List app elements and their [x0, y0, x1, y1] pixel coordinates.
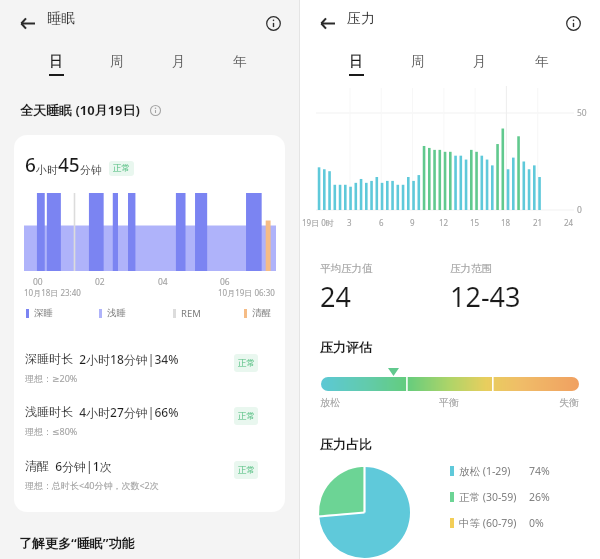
staticText: 小时 [36, 163, 58, 177]
staticText: 深睡时长 [25, 351, 73, 366]
staticText: 浅睡 [107, 307, 126, 319]
button[interactable]: 日 [40, 53, 72, 76]
button[interactable]: 深睡时长 [14, 345, 285, 395]
staticText: 浅睡时长 [25, 404, 73, 419]
staticText: 理想：≤80% [25, 425, 78, 437]
staticText: 放松 [320, 396, 340, 409]
staticText: 0 [577, 204, 582, 216]
staticText: 24 [564, 217, 574, 228]
staticText: 6 [25, 152, 36, 178]
staticText: 理想：总时长<40分钟，次数<2次 [25, 479, 159, 491]
staticText: 正常 [113, 163, 130, 174]
staticText: 分钟 [80, 163, 102, 177]
staticText: 正常 (30-59) [459, 490, 529, 504]
staticText: 年 [233, 53, 247, 70]
staticText: 理想：≥20% [25, 372, 78, 384]
staticText: 压力占比 [320, 436, 372, 452]
staticText: 清醒 [25, 458, 49, 473]
staticText: 全天睡眠 (10月19日) [20, 101, 140, 119]
staticText: 50 [577, 107, 587, 119]
staticText: 正常 [238, 411, 255, 422]
staticText: 压力评估 [320, 339, 372, 355]
staticText: 周 [110, 53, 124, 70]
staticText: 10月18日 23:40 [24, 287, 81, 298]
button[interactable]: 周 [101, 53, 133, 74]
staticText: 正常 [238, 465, 255, 476]
button[interactable]: 浅睡时长 [14, 398, 285, 448]
staticText: 26% [529, 490, 550, 504]
button[interactable]: 日 [340, 53, 372, 76]
staticText: 04 [158, 276, 168, 288]
staticText: 06 [220, 276, 230, 288]
staticText: 45 [58, 152, 80, 178]
staticText: 年 [535, 53, 549, 70]
staticText: 15 [470, 217, 480, 228]
staticText: 6分钟|1次 [49, 458, 112, 474]
button[interactable]: 周 [402, 53, 434, 74]
staticText: 19日 0时 [302, 217, 334, 228]
button[interactable]: 年 [526, 53, 558, 74]
staticText: 02 [95, 276, 105, 288]
staticText: 3 [347, 217, 352, 228]
staticText: 00 [33, 276, 43, 288]
button[interactable]: Info [559, 9, 587, 37]
staticText: 0% [529, 516, 544, 530]
staticText: 日 [349, 53, 363, 70]
staticText: 24 [320, 278, 351, 315]
staticText: 6 [379, 217, 384, 228]
staticText: 21 [533, 217, 543, 228]
button[interactable]: 清醒 [14, 452, 285, 502]
staticText: 深睡 [34, 307, 53, 319]
staticText: 中等 (60-79) [459, 516, 529, 530]
staticText: 74% [529, 464, 550, 478]
button[interactable]: 月 [163, 53, 195, 74]
button[interactable]: 月 [464, 53, 496, 74]
staticText: 10月19日 06:30 [218, 287, 275, 298]
staticText: 12 [439, 217, 449, 228]
staticText: 压力 [347, 10, 375, 28]
staticText: 日 [49, 53, 63, 70]
button[interactable]: Back [13, 9, 41, 37]
button[interactable]: 年 [224, 53, 256, 74]
staticText: 周 [411, 53, 425, 70]
staticText: 清醒 [252, 307, 271, 319]
staticText: 月 [473, 53, 487, 70]
button[interactable]: Info [259, 9, 287, 37]
staticText: 4小时27分钟|66% [73, 404, 179, 420]
staticText: 放松 (1-29) [459, 464, 529, 478]
staticText: 月 [172, 53, 186, 70]
staticText: 正常 [238, 358, 255, 369]
staticText: 18 [501, 217, 511, 228]
staticText: 压力范围 [450, 262, 492, 275]
staticText: 12-43 [450, 278, 521, 315]
staticText: 失衡 [559, 396, 579, 409]
staticText: 了解更多“睡眠”功能 [19, 534, 135, 552]
staticText: 平衡 [439, 396, 459, 409]
staticText: 2小时18分钟|34% [73, 351, 179, 367]
button[interactable]: Back [313, 9, 341, 37]
staticText: 平均压力值 [320, 262, 373, 275]
staticText: 9 [410, 217, 415, 228]
staticText: 睡眠 [47, 10, 75, 28]
staticText: REM [181, 307, 201, 320]
